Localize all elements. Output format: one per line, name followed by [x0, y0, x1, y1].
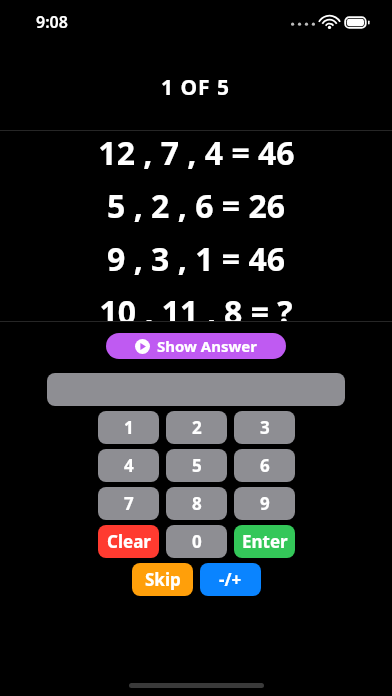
- staticText: Enter: [242, 530, 288, 553]
- staticText: 6: [260, 454, 270, 477]
- staticText: 4: [124, 454, 134, 477]
- staticText: 8: [192, 492, 202, 515]
- button[interactable]: 0: [166, 525, 227, 558]
- button[interactable]: 4: [98, 449, 159, 482]
- button[interactable]: [47, 373, 345, 406]
- button[interactable]: 3: [234, 411, 295, 444]
- staticText: Show Answer: [157, 336, 257, 356]
- staticText: 12 , 7 , 4 = 46: [98, 131, 295, 175]
- staticText: 1: [124, 416, 134, 439]
- button[interactable]: Skip: [132, 563, 193, 596]
- staticText: Skip: [145, 568, 181, 591]
- staticText: 2: [192, 416, 202, 439]
- button[interactable]: 9: [234, 487, 295, 520]
- staticText: 10 , 11 , 8 = ?: [99, 290, 293, 321]
- staticText: 9:08: [36, 11, 68, 33]
- staticText: -/+: [219, 568, 242, 591]
- button[interactable]: Show Answer: [106, 333, 286, 359]
- staticText: 3: [260, 416, 270, 439]
- button[interactable]: 8: [166, 487, 227, 520]
- button[interactable]: Enter: [234, 525, 295, 558]
- button[interactable]: 5: [166, 449, 227, 482]
- button[interactable]: 1: [98, 411, 159, 444]
- button[interactable]: 7: [98, 487, 159, 520]
- staticText: Clear: [107, 530, 151, 553]
- staticText: 5 , 2 , 6 = 26: [107, 184, 285, 228]
- staticText: 7: [124, 492, 134, 515]
- staticText: 0: [192, 530, 202, 553]
- button[interactable]: -/+: [200, 563, 261, 596]
- staticText: 9: [260, 492, 270, 515]
- button[interactable]: 6: [234, 449, 295, 482]
- button[interactable]: Clear: [98, 525, 159, 558]
- button[interactable]: 2: [166, 411, 227, 444]
- staticText: 5: [192, 454, 202, 477]
- staticText: 1 OF 5: [161, 73, 231, 102]
- staticText: 9 , 3 , 1 = 46: [107, 237, 285, 281]
